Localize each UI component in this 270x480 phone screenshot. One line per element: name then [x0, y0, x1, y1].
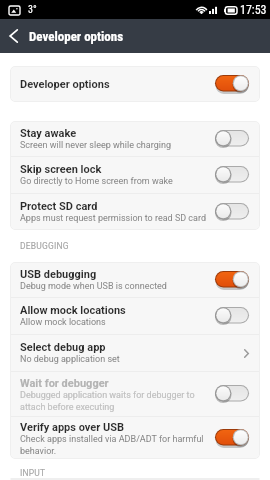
staticText: Check apps installed via ADB/ADT for har… [20, 434, 204, 456]
staticText: Screen will never sleep while charging [20, 140, 171, 151]
staticText: 3° [28, 4, 37, 16]
button[interactable]: Wait for debugger [10, 372, 260, 416]
button[interactable]: Developer options [10, 66, 260, 102]
staticText: Allow mock locations [20, 304, 126, 317]
staticText: DEBUGGING [20, 241, 69, 251]
staticText: Debug mode when USB is connected [20, 281, 167, 292]
button[interactable]: Stay awake [10, 121, 260, 156]
staticText: Skip screen lock [20, 163, 102, 176]
staticText: Protect SD card [20, 200, 98, 213]
button[interactable]: Navigate up [0, 19, 27, 53]
staticText: Wait for debugger [20, 377, 109, 390]
staticText: Select debug app [20, 341, 106, 354]
staticText: INPUT [20, 468, 46, 478]
staticText: Verify apps over USB [20, 421, 125, 434]
staticText: Developer options [29, 29, 124, 44]
button[interactable]: USB debugging [10, 262, 260, 297]
staticText: Allow mock locations [20, 317, 106, 328]
staticText: No debug application set [20, 354, 120, 365]
button[interactable]: Verify apps over USB [10, 417, 260, 459]
staticText: Developer options [20, 78, 110, 91]
button[interactable]: Skip screen lock [10, 157, 260, 193]
staticText: Debugged application waits for debugger … [20, 390, 195, 412]
staticText: Go directly to Home screen from wake [20, 176, 173, 187]
staticText: 17:53 [240, 3, 267, 17]
button[interactable]: Protect SD card [10, 194, 260, 230]
staticText: USB debugging [20, 268, 97, 281]
staticText: Apps must request permission to read SD … [20, 213, 207, 224]
staticText: Stay awake [20, 127, 77, 140]
button[interactable]: Select debug app [10, 335, 260, 371]
button[interactable]: Allow mock locations [10, 298, 260, 334]
